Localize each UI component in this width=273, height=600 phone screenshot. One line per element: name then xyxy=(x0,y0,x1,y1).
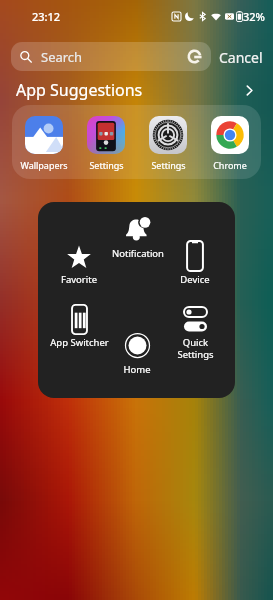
staticText: 23:12 xyxy=(32,9,61,24)
button[interactable]: Device xyxy=(163,236,227,286)
staticText: Settings xyxy=(151,159,186,171)
staticText: Quick Settings xyxy=(177,336,214,360)
button[interactable]: Chrome xyxy=(199,113,261,171)
staticText: Notification xyxy=(112,247,164,260)
staticText: Wallpapers xyxy=(20,159,68,171)
button[interactable]: Google Lens xyxy=(177,42,211,71)
staticText: 32% xyxy=(243,9,265,24)
staticText: Chrome xyxy=(213,159,247,171)
staticText: App Switcher xyxy=(50,336,109,349)
button[interactable]: Settings xyxy=(137,113,199,171)
button[interactable]: More app suggestions xyxy=(240,81,258,99)
staticText: App Suggestions xyxy=(16,79,143,101)
button[interactable]: Wallpapers xyxy=(12,113,75,171)
staticText: Cancel xyxy=(219,48,263,67)
staticText: Settings xyxy=(89,159,124,171)
staticText: Search xyxy=(41,48,83,66)
staticText: Device xyxy=(180,273,210,286)
button[interactable]: Home xyxy=(105,329,169,376)
button[interactable]: Quick Settings xyxy=(163,303,227,360)
staticText: Favorite xyxy=(61,273,97,286)
button[interactable]: Notification xyxy=(106,212,170,260)
button[interactable]: Cancel xyxy=(216,44,266,71)
button[interactable]: Search xyxy=(11,42,211,71)
other: Search xyxy=(20,51,32,63)
staticText: Home xyxy=(123,363,151,376)
button[interactable]: Settings xyxy=(75,113,137,171)
button[interactable]: App Switcher xyxy=(47,300,111,349)
button[interactable]: Favorite xyxy=(47,241,111,286)
